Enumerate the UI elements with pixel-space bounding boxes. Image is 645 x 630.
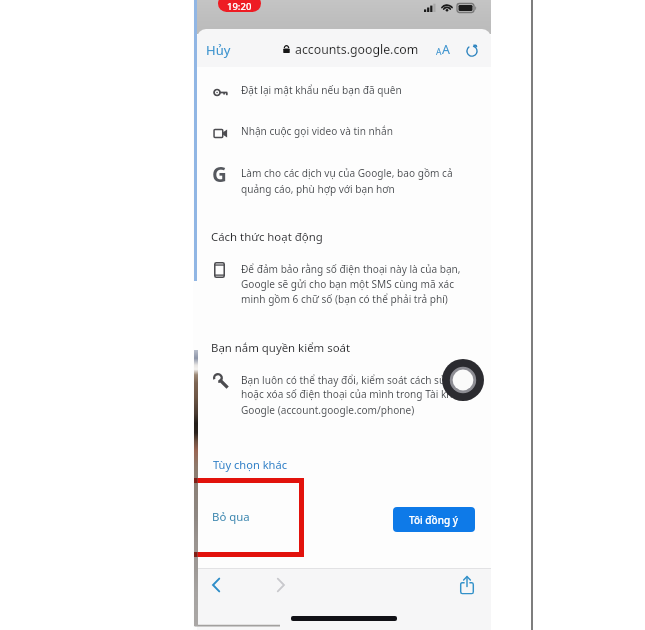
staticText: Bạn nắm quyền kiểm soát [211,340,351,356]
staticText: A [436,46,442,58]
button[interactable]: Bỏ qua [212,508,254,526]
staticText: accounts.google.com [295,41,418,58]
button[interactable]: Reload page [462,40,482,60]
staticText: Bạn luôn có thể thay đổi, kiểm soát cách… [241,373,446,387]
staticText: Đặt lại mật khẩu nếu bạn đã quên [241,83,402,97]
staticText: Nhận cuộc gọi video và tin nhắn [241,124,393,138]
staticText: Tôi đồng ý [409,513,459,527]
staticText: G [212,160,227,188]
button[interactable]: Share [456,574,478,596]
button[interactable]: Back [206,574,228,596]
staticText: Google (account.google.com/phone) [241,403,415,417]
staticText: hoặc xóa số điện thoại của mình trong Tà… [241,387,453,401]
staticText: Làm cho các dịch vụ của Google, bao gồm … [241,166,453,180]
staticText: A [442,41,450,58]
button[interactable]: Tùy chọn khác [213,455,291,473]
button[interactable]: Text size options [434,40,452,59]
button[interactable]: accounts.google.com [282,40,418,59]
staticText: 19:20 [227,0,252,12]
staticText: Bỏ qua [212,509,250,525]
button[interactable]: Hủy [206,40,234,59]
button[interactable]: Forward [269,574,291,596]
staticText: Cách thức hoạt động [211,229,323,245]
staticText: minh gồm 6 chữ số (bạn có thể phải trả p… [241,292,448,306]
button[interactable]: Tôi đồng ý [393,507,475,532]
staticText: Tùy chọn khác [213,457,287,472]
staticText: Hủy [206,41,231,59]
staticText: Google sẽ gửi cho bạn một SMS cùng mã xá… [241,277,455,291]
staticText: quảng cáo, phù hợp với bạn hơn [241,182,395,196]
staticText: Để đảm bảo rằng số điện thoại này là của… [241,262,461,276]
